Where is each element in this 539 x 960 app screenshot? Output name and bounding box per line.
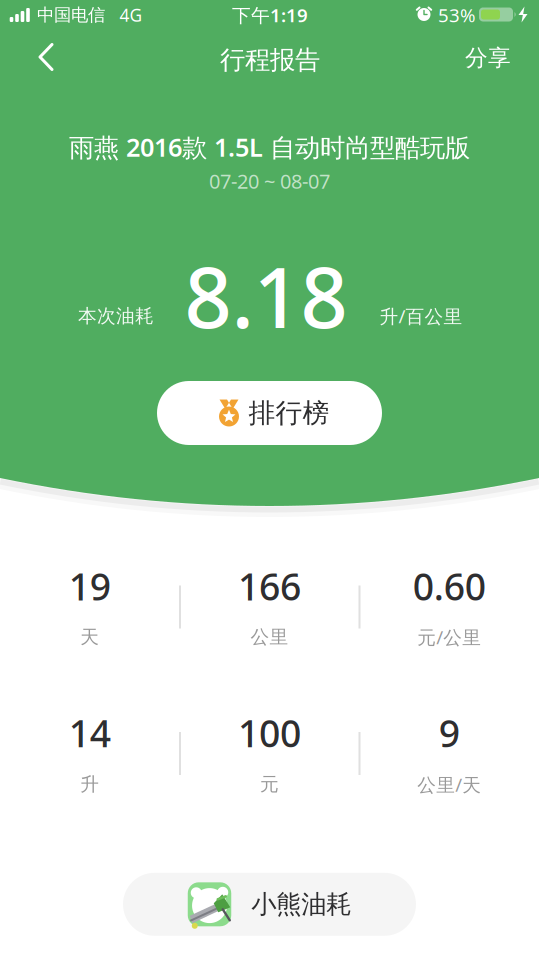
staticText: 8.18 [184, 241, 347, 351]
staticText: 9 [439, 708, 460, 757]
button[interactable]: 小熊油耗 [123, 873, 416, 936]
staticText: 07-20 ~ 08-07 [209, 168, 330, 194]
staticText: 公里/天 [417, 772, 481, 797]
staticText: 天 [80, 625, 99, 648]
staticText: 公里 [250, 625, 288, 648]
staticText: 0.60 [413, 561, 486, 611]
button[interactable]: 分享 [465, 44, 511, 72]
staticText: 14 [69, 708, 111, 757]
staticText: 升/百公里 [379, 304, 462, 328]
staticText: 排行榜 [248, 397, 329, 429]
staticText: 元/公里 [417, 625, 481, 649]
button[interactable]: 返回 [23, 35, 67, 79]
staticText: 19 [69, 561, 111, 611]
staticText: 中国电信 [37, 4, 105, 26]
staticText: 166 [238, 561, 301, 611]
staticText: 53% [438, 3, 476, 27]
staticText: 雨燕 2016款 1.5L 自动时尚型酷玩版 [69, 130, 470, 164]
staticText: 元 [260, 773, 279, 796]
staticText: 本次油耗 [78, 304, 154, 327]
staticText: 小熊油耗 [251, 889, 351, 920]
button[interactable]: 排行榜 [157, 381, 382, 445]
staticText: 分享 [465, 44, 511, 72]
staticText: 升 [80, 773, 99, 796]
staticText: 行程报告 [220, 44, 320, 75]
staticText: 下午1:19 [232, 3, 308, 27]
staticText: 4G [119, 3, 142, 26]
staticText: 100 [238, 708, 301, 757]
